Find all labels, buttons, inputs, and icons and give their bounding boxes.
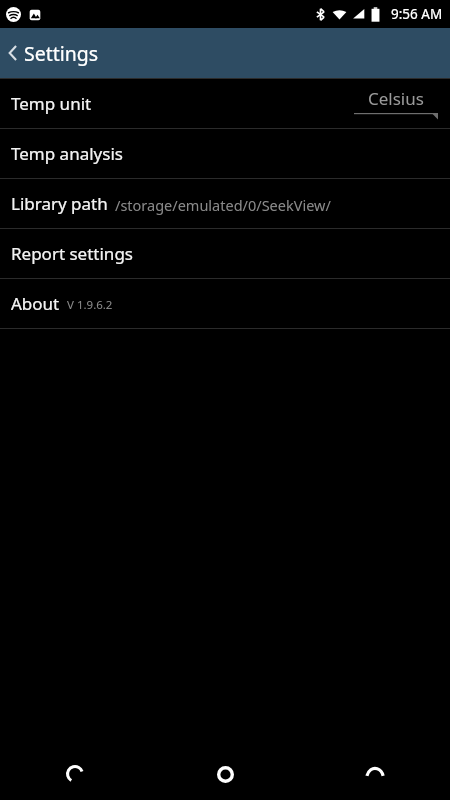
staticText: Library path xyxy=(11,192,108,215)
button[interactable]: Temp unit xyxy=(0,79,450,128)
staticText: Report settings xyxy=(11,242,133,265)
button[interactable]: Recent apps xyxy=(300,748,450,800)
staticText: Temp analysis xyxy=(11,142,123,165)
staticText: V 1.9.6.2 xyxy=(67,297,113,313)
staticText: /storage/emulated/0/SeekView/ xyxy=(115,195,331,215)
staticText: 9:56 AM xyxy=(391,5,443,23)
button[interactable]: Report settings xyxy=(0,229,450,278)
button[interactable]: About xyxy=(0,279,450,328)
button[interactable]: Home xyxy=(150,748,300,800)
button[interactable]: Temperature unit selector xyxy=(354,87,438,121)
staticText: About xyxy=(11,292,60,315)
staticText: Celsius xyxy=(368,87,424,110)
staticText: Settings xyxy=(24,40,99,67)
button[interactable]: Back xyxy=(0,748,150,800)
button[interactable]: Settings xyxy=(0,28,450,78)
button[interactable]: Temp analysis xyxy=(0,129,450,178)
button[interactable]: Library path xyxy=(0,179,450,228)
staticText: Temp unit xyxy=(11,92,92,115)
